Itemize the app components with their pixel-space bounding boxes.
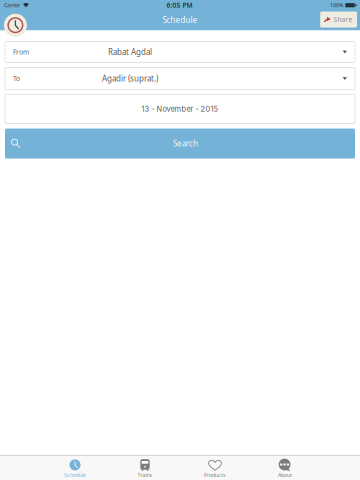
staticText: Agadir (suprat.) (102, 73, 158, 84)
button[interactable]: Schedule (40, 455, 110, 480)
staticText: Carrier (4, 2, 20, 9)
button[interactable]: To (5, 67, 355, 89)
staticText: Share (333, 15, 352, 24)
staticText: 100% (330, 2, 343, 9)
staticText: To (13, 74, 20, 83)
staticText: Schedule (64, 471, 86, 478)
button[interactable]: Recent searches (3, 13, 27, 37)
button[interactable]: Share (320, 11, 357, 27)
button[interactable]: Trains (110, 455, 180, 480)
staticText: Schedule (162, 15, 197, 25)
button[interactable]: Products (180, 455, 250, 480)
staticText: 6:05 PM (166, 1, 192, 10)
button[interactable]: 13 - November - 2015 (5, 94, 355, 123)
button[interactable]: Search (5, 128, 355, 158)
staticText: Products (204, 471, 226, 478)
button[interactable]: About (250, 455, 320, 480)
staticText: Trains (137, 471, 152, 478)
staticText: Search (173, 138, 198, 149)
button[interactable]: From (5, 41, 355, 62)
staticText: 13 - November - 2015 (141, 104, 218, 113)
staticText: About (278, 471, 292, 478)
staticText: From (13, 48, 29, 56)
staticText: Rabat Agdal (108, 47, 152, 57)
